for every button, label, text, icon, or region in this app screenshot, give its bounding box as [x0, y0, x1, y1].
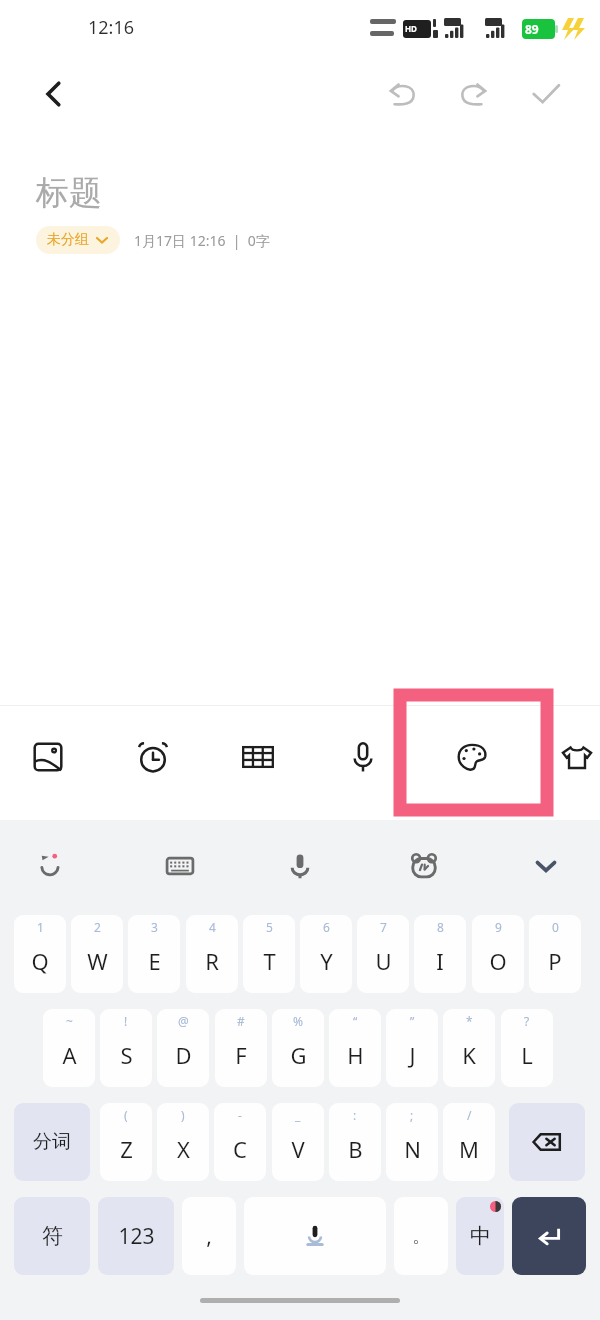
staticText: P — [548, 946, 562, 976]
button[interactable]: 7 — [357, 915, 409, 993]
staticText: F — [235, 1040, 247, 1070]
button[interactable]: Redo — [446, 66, 502, 122]
staticText: J — [409, 1040, 416, 1070]
staticText: 。 — [412, 1225, 430, 1248]
button[interactable]: 2 — [71, 915, 123, 993]
button[interactable]: 符 — [14, 1197, 90, 1275]
button[interactable]: # — [215, 1009, 267, 1087]
staticText: % — [293, 1013, 303, 1029]
button[interactable]: Voice input — [333, 727, 393, 787]
button[interactable]: Back — [26, 66, 82, 122]
staticText: / — [467, 1107, 472, 1123]
staticText: * — [466, 1013, 473, 1029]
staticText: @ — [178, 1013, 189, 1029]
button[interactable]: Backspace — [509, 1103, 585, 1181]
button[interactable]: ~ — [43, 1009, 95, 1087]
button[interactable]: Voice input — [272, 838, 328, 894]
button[interactable]: 分词 — [14, 1103, 90, 1181]
button[interactable]: 0 — [529, 915, 581, 993]
staticText: 2 — [94, 919, 101, 935]
button[interactable]: Text style — [547, 727, 600, 787]
staticText: 1月17日 12:16 | 0字 — [134, 231, 270, 250]
button[interactable]: Theme colour — [442, 727, 502, 787]
staticText: 5 — [266, 919, 273, 935]
button[interactable]: Reminder — [123, 727, 183, 787]
staticText: 89 — [525, 21, 539, 37]
button[interactable]: ! — [100, 1009, 152, 1087]
button[interactable]: ( — [100, 1103, 152, 1181]
staticText: ? — [524, 1013, 530, 1029]
button[interactable]: Keyboard layout — [152, 838, 208, 894]
button[interactable]: Undo — [374, 66, 430, 122]
button[interactable]: 123 — [98, 1197, 174, 1275]
staticText: # — [237, 1013, 245, 1029]
staticText: ! — [124, 1013, 128, 1029]
button[interactable]: Insert image — [18, 727, 78, 787]
button[interactable]: ; — [386, 1103, 438, 1181]
staticText: 7 — [380, 919, 387, 935]
button[interactable]: Insert table — [228, 727, 288, 787]
button[interactable]: Space — [244, 1197, 386, 1275]
button[interactable]: 4 — [186, 915, 238, 993]
button[interactable]: 3 — [128, 915, 180, 993]
staticText: O — [489, 946, 507, 976]
staticText: - — [238, 1107, 242, 1123]
button[interactable]: Emoji — [24, 838, 80, 894]
button[interactable]: - — [214, 1103, 266, 1181]
button[interactable]: @ — [157, 1009, 209, 1087]
button[interactable]: , — [182, 1197, 236, 1275]
button[interactable]: * — [443, 1009, 495, 1087]
button[interactable]: _ — [272, 1103, 324, 1181]
staticText: 8 — [437, 919, 444, 935]
button[interactable]: ? — [501, 1009, 553, 1087]
button[interactable]: ” — [386, 1009, 438, 1087]
button[interactable]: / — [443, 1103, 495, 1181]
button[interactable]: : — [329, 1103, 381, 1181]
button[interactable]: 5 — [243, 915, 295, 993]
button[interactable]: Done — [518, 66, 574, 122]
staticText: R — [205, 946, 219, 976]
staticText: V — [291, 1134, 305, 1164]
staticText: I — [436, 946, 444, 976]
staticText: Z — [120, 1134, 133, 1164]
button[interactable]: 8 — [414, 915, 466, 993]
staticText: X — [177, 1134, 190, 1164]
staticText: K — [462, 1040, 476, 1070]
button[interactable]: 1 — [14, 915, 66, 993]
button[interactable]: “ — [329, 1009, 381, 1087]
staticText: W — [87, 946, 108, 976]
staticText: A — [62, 1040, 77, 1070]
staticText: 分词 — [33, 1130, 71, 1154]
button[interactable]: 6 — [300, 915, 352, 993]
button[interactable]: 。 — [394, 1197, 448, 1275]
button[interactable]: 9 — [472, 915, 524, 993]
staticText: 中 — [470, 1223, 491, 1249]
button[interactable]: 中 — [456, 1197, 504, 1275]
staticText: 0 — [552, 919, 559, 935]
staticText: 123 — [118, 1222, 155, 1251]
staticText: 未分组 — [47, 231, 89, 249]
staticText: ~ — [66, 1013, 73, 1029]
staticText: U — [375, 946, 392, 976]
staticText: ” — [410, 1013, 415, 1029]
button[interactable]: Enter — [512, 1197, 586, 1275]
staticText: E — [148, 946, 161, 976]
staticText: 6 — [323, 919, 330, 935]
staticText: ( — [124, 1107, 128, 1123]
staticText: HD — [405, 23, 417, 34]
staticText: ; — [410, 1107, 414, 1123]
button[interactable]: 未分组 — [36, 226, 120, 254]
button[interactable]: Hide keyboard — [518, 838, 574, 894]
staticText: M — [459, 1134, 479, 1164]
staticText: 符 — [42, 1223, 63, 1249]
staticText: N — [404, 1134, 421, 1164]
staticText: 3 — [151, 919, 158, 935]
staticText: H — [347, 1040, 364, 1070]
staticText: Q — [31, 946, 49, 976]
button[interactable]: Baidu input method — [396, 838, 452, 894]
staticText: G — [290, 1040, 307, 1070]
staticText: S — [120, 1040, 133, 1070]
button[interactable]: % — [272, 1009, 324, 1087]
staticText: B — [348, 1134, 363, 1164]
button[interactable]: ) — [157, 1103, 209, 1181]
